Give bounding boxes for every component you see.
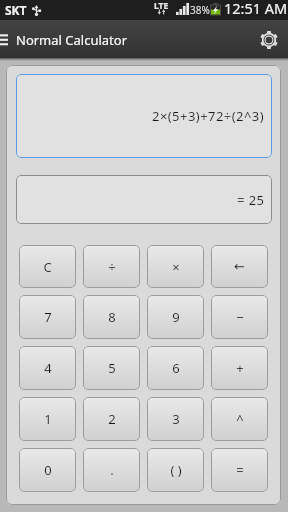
- staticText: 2×(5+3)+72÷(2^3): [152, 107, 265, 125]
- button[interactable]: 2: [83, 397, 140, 441]
- button[interactable]: 3: [147, 397, 204, 441]
- button[interactable]: ×: [147, 245, 204, 288]
- staticText: 5: [108, 359, 116, 377]
- staticText: +: [236, 359, 244, 377]
- button[interactable]: ÷: [83, 245, 140, 288]
- staticText: ×: [172, 258, 180, 276]
- staticText: =: [236, 461, 244, 479]
- button[interactable]: −: [211, 295, 268, 339]
- button[interactable]: .: [83, 448, 140, 492]
- button[interactable]: 6: [147, 346, 204, 390]
- staticText: 2: [108, 410, 116, 428]
- staticText: 12:51 AM: [224, 0, 288, 18]
- staticText: = 25: [237, 191, 265, 209]
- staticText: ^: [236, 410, 244, 428]
- button[interactable]: 0: [19, 448, 76, 492]
- button[interactable]: 7: [19, 295, 76, 339]
- button[interactable]: ←: [211, 245, 268, 288]
- staticText: 9: [172, 308, 180, 326]
- staticText: SKT: [5, 2, 27, 18]
- button[interactable]: Menu: [0, 20, 11, 57]
- button[interactable]: 1: [19, 397, 76, 441]
- button[interactable]: ^: [211, 397, 268, 441]
- staticText: 3: [172, 410, 180, 428]
- button[interactable]: Settings: [251, 20, 288, 57]
- button[interactable]: C: [19, 245, 76, 288]
- staticText: ←: [234, 259, 245, 274]
- staticText: ( ): [170, 461, 182, 479]
- button[interactable]: =: [211, 448, 268, 492]
- staticText: Normal Calculator: [16, 31, 128, 49]
- button[interactable]: 4: [19, 346, 76, 390]
- button[interactable]: 2×(5+3)+72÷(2^3): [16, 74, 272, 158]
- button[interactable]: 5: [83, 346, 140, 390]
- staticText: LTE: [154, 0, 169, 12]
- button[interactable]: ( ): [147, 448, 204, 492]
- button[interactable]: 8: [83, 295, 140, 339]
- staticText: C: [43, 258, 52, 276]
- staticText: ÷: [108, 258, 116, 276]
- staticText: 1: [44, 410, 52, 428]
- button[interactable]: +: [211, 346, 268, 390]
- staticText: −: [236, 308, 244, 326]
- staticText: 6: [172, 359, 180, 377]
- button[interactable]: 9: [147, 295, 204, 339]
- staticText: 4: [44, 359, 52, 377]
- staticText: 0: [44, 461, 52, 479]
- staticText: .: [110, 461, 114, 479]
- staticText: 38%: [190, 3, 210, 17]
- staticText: 8: [108, 308, 116, 326]
- staticText: 7: [44, 308, 52, 326]
